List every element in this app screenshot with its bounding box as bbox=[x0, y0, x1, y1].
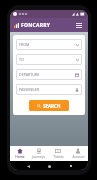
staticText: Home bbox=[15, 155, 25, 159]
staticText: SEARCH bbox=[43, 103, 61, 109]
staticText: Journeys bbox=[32, 155, 45, 159]
staticText: Account bbox=[72, 155, 85, 159]
button[interactable]: SEARCH bbox=[29, 100, 69, 111]
staticText: FONCARRY bbox=[21, 22, 51, 29]
button[interactable]: Back bbox=[24, 162, 32, 170]
staticText: PASSENGER bbox=[19, 87, 39, 92]
staticText: FROM bbox=[19, 42, 30, 47]
button[interactable]: PASSENGER bbox=[16, 84, 82, 95]
button[interactable]: DEPARTURE bbox=[16, 69, 82, 80]
button[interactable]: Recent apps bbox=[67, 162, 75, 170]
button[interactable]: Journeys bbox=[29, 146, 48, 161]
button[interactable]: Account bbox=[68, 146, 88, 161]
button[interactable]: FROM bbox=[16, 39, 82, 50]
button[interactable]: TO bbox=[16, 54, 82, 65]
staticText: DEPARTURE bbox=[19, 72, 40, 77]
staticText: Tickets bbox=[53, 155, 64, 159]
button[interactable]: Open navigation menu bbox=[73, 20, 84, 31]
button[interactable]: Home bbox=[45, 162, 53, 170]
staticText: TO bbox=[19, 57, 24, 62]
button[interactable]: Tickets bbox=[48, 146, 68, 161]
button[interactable]: Home bbox=[10, 146, 29, 161]
